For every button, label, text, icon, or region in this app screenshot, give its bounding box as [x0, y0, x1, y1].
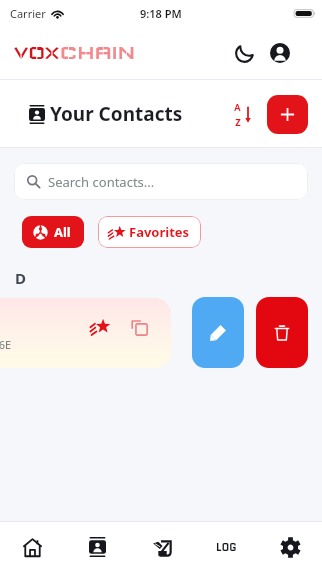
staticText: LOG [216, 539, 237, 555]
staticText: VOX [14, 43, 60, 63]
button[interactable]: Home [0, 521, 65, 573]
button[interactable]: Favorite [89, 317, 109, 337]
button[interactable]: DV [0, 298, 171, 368]
staticText: 9:18 PM [140, 6, 182, 21]
button[interactable]: Search contacts... [14, 163, 308, 200]
button[interactable]: Sort A to Z [228, 99, 258, 129]
staticText: Favorites [129, 223, 190, 241]
staticText: All [54, 223, 71, 241]
button[interactable]: All [22, 216, 84, 248]
staticText: Carrier [10, 6, 46, 21]
button[interactable]: Delete [256, 297, 308, 368]
button[interactable]: Copy address [129, 317, 149, 337]
button[interactable]: Toggle dark mode [228, 37, 260, 69]
staticText: 0x71C7...4F6E [0, 337, 12, 352]
button[interactable]: Profile [264, 37, 296, 69]
button[interactable]: Settings [258, 521, 322, 573]
button[interactable]: Transfers [130, 521, 194, 573]
staticText: Your Contacts [50, 101, 183, 127]
staticText: A [234, 100, 241, 114]
staticText: D [15, 268, 26, 288]
staticText: Search contacts... [48, 173, 155, 191]
staticText: CHAIN [60, 43, 136, 63]
button[interactable]: Favorites [98, 216, 201, 248]
button[interactable]: LOG [194, 521, 258, 573]
staticText: Z [235, 115, 241, 129]
button[interactable]: Edit [192, 297, 244, 368]
button[interactable]: Contacts [65, 521, 130, 573]
button[interactable]: Add contact [267, 95, 308, 134]
